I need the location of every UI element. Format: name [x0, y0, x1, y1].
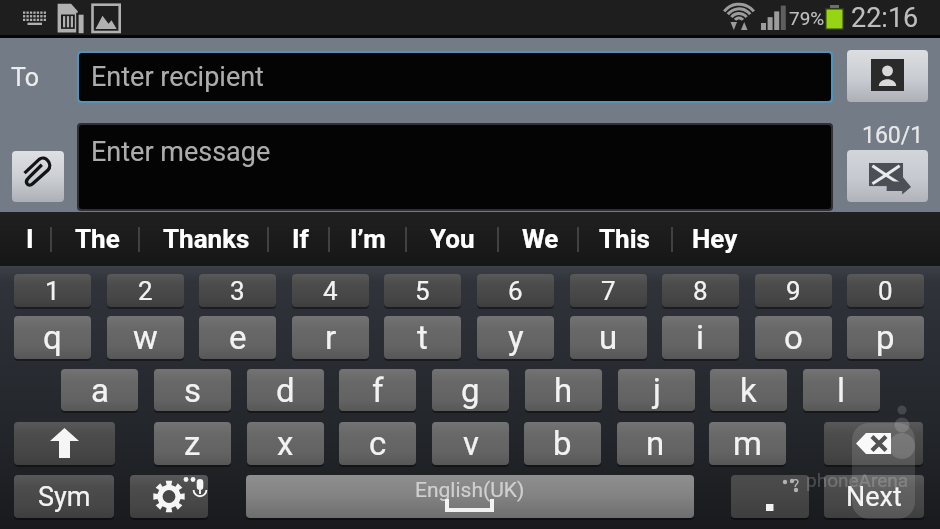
button[interactable]: The [53, 212, 141, 266]
button[interactable]: Attach [12, 151, 64, 202]
button[interactable]: Settings and voice input [130, 475, 208, 518]
staticText: j [653, 371, 661, 410]
staticText: q [43, 318, 62, 357]
staticText: I [26, 224, 34, 254]
staticText: t [417, 318, 428, 357]
button[interactable]: y [477, 316, 554, 359]
staticText: 5 [415, 276, 430, 306]
button[interactable]: Enter message [79, 125, 831, 209]
button[interactable]: 0 [847, 274, 924, 307]
button[interactable]: We [496, 212, 584, 266]
staticText: m [733, 424, 762, 463]
staticText: To [11, 63, 39, 92]
staticText: d [276, 371, 295, 410]
staticText: f [372, 371, 384, 410]
staticText: 22:16 [851, 2, 919, 34]
button[interactable]: You [408, 212, 496, 266]
button[interactable]: 9 [755, 274, 832, 307]
staticText: The [75, 224, 120, 254]
button[interactable]: 5 [384, 274, 461, 307]
staticText: r [325, 318, 337, 357]
button[interactable]: Contacts [847, 50, 928, 102]
staticText: h [554, 371, 573, 410]
button[interactable]: f [339, 369, 416, 411]
button[interactable]: m [709, 422, 786, 465]
staticText: p [876, 318, 895, 357]
button[interactable]: d [247, 369, 324, 411]
staticText: Thanks [163, 224, 250, 254]
staticText: b [553, 424, 572, 463]
button[interactable]: z [154, 422, 231, 465]
staticText: 79% [789, 7, 825, 29]
button[interactable]: b [524, 422, 601, 465]
button[interactable]: Sym [14, 475, 114, 518]
button[interactable]: 4 [292, 274, 369, 307]
button[interactable]: v [432, 422, 509, 465]
button[interactable]: Thanks [162, 212, 250, 266]
button[interactable]: u [570, 316, 647, 359]
staticText: phoneArena [806, 469, 909, 491]
button[interactable]: Hey [671, 212, 759, 266]
button[interactable]: t [384, 316, 461, 359]
button[interactable]: a [61, 369, 138, 411]
staticText: v [463, 424, 479, 463]
button[interactable]: p [847, 316, 924, 359]
staticText: x [277, 424, 294, 463]
button[interactable]: 7 [570, 274, 647, 307]
button[interactable]: I’m [324, 212, 412, 266]
staticText: Sym [38, 481, 91, 513]
staticText: If [292, 224, 309, 254]
staticText: 6 [508, 276, 523, 306]
staticText: u [599, 318, 618, 357]
button[interactable]: l [803, 369, 880, 411]
button[interactable]: 3 [199, 274, 276, 307]
staticText: English(UK) [415, 478, 525, 503]
staticText: z [184, 424, 201, 463]
staticText: 0 [878, 276, 893, 306]
button[interactable]: 6 [477, 274, 554, 307]
staticText: y [508, 318, 524, 357]
staticText: 1 [45, 276, 60, 306]
staticText: Enter message [91, 136, 271, 168]
staticText: o [784, 318, 803, 357]
staticText: 3 [230, 276, 245, 306]
staticText: n [646, 424, 665, 463]
button[interactable]: Send message [847, 150, 928, 202]
button[interactable]: 2 [107, 274, 184, 307]
staticText: 2 [138, 276, 153, 306]
button[interactable]: j [618, 369, 695, 411]
button[interactable]: x [247, 422, 324, 465]
staticText: 7 [601, 276, 616, 306]
button[interactable]: g [432, 369, 509, 411]
button[interactable]: 1 [14, 274, 91, 307]
button[interactable]: This [580, 212, 668, 266]
button[interactable]: Space [246, 475, 694, 518]
staticText: l [837, 371, 846, 410]
staticText: e [229, 318, 247, 357]
button[interactable]: i [662, 316, 739, 359]
button[interactable]: I [0, 212, 74, 266]
button[interactable]: If [256, 212, 344, 266]
button[interactable]: Period [731, 475, 809, 518]
button[interactable]: Shift [14, 422, 115, 465]
button[interactable]: Backspace [824, 422, 923, 465]
staticText: ? [792, 476, 800, 494]
staticText: 160/1 [862, 122, 924, 149]
button[interactable]: r [292, 316, 369, 359]
staticText: We [522, 224, 559, 254]
button[interactable]: w [107, 316, 184, 359]
button[interactable]: c [339, 422, 416, 465]
button[interactable]: 8 [662, 274, 739, 307]
staticText: Next [846, 481, 902, 513]
button[interactable]: q [14, 316, 91, 359]
button[interactable]: k [710, 369, 787, 411]
button[interactable]: s [154, 369, 231, 411]
button[interactable]: e [199, 316, 276, 359]
staticText: 4 [323, 276, 338, 306]
button[interactable]: Next [824, 475, 924, 518]
button[interactable]: n [617, 422, 694, 465]
button[interactable]: Enter recipient [79, 53, 831, 101]
button[interactable]: h [525, 369, 602, 411]
staticText: c [369, 424, 387, 463]
button[interactable]: o [755, 316, 832, 359]
